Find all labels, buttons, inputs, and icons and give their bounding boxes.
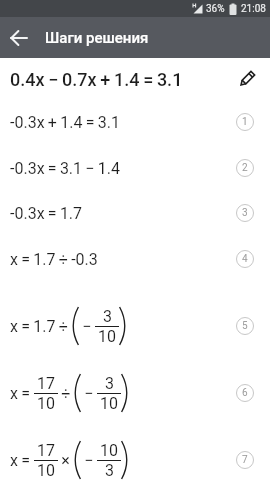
button[interactable]: x = 1.7 ÷ -0.3 <box>0 236 270 282</box>
staticText: 2 <box>242 162 248 174</box>
staticText: × <box>58 451 74 470</box>
staticText: x = <box>10 451 34 470</box>
staticText: 5 <box>242 320 248 332</box>
staticText: − <box>81 384 97 403</box>
button[interactable] <box>7 26 31 50</box>
staticText: 3 <box>105 461 114 480</box>
staticText: 0.4x − 0.7x + 1.4 = 3.1 <box>10 69 183 90</box>
staticText: 10 <box>100 394 118 413</box>
staticText: 4 <box>242 253 248 265</box>
staticText: 21:08 <box>241 3 266 15</box>
staticText: 10 <box>98 327 116 346</box>
staticText: -0.3x = 1.7 <box>10 204 83 223</box>
staticText: − <box>81 451 97 470</box>
staticText: 3 <box>242 207 248 219</box>
button[interactable]: -0.3x + 1.4 = 3.1 <box>0 99 270 145</box>
staticText: 3 <box>103 307 112 326</box>
staticText: 10 <box>100 441 118 460</box>
staticText: -0.3x + 1.4 = 3.1 <box>10 113 120 132</box>
button[interactable]: -0.3x = 1.7 <box>0 190 270 236</box>
staticText: 36% <box>206 3 225 15</box>
staticText: 10 <box>37 461 55 480</box>
staticText: x = 1.7 ÷ <box>10 317 72 336</box>
staticText: x = 1.7 ÷ -0.3 <box>10 250 98 269</box>
staticText: 3 <box>105 374 114 393</box>
staticText: 6 <box>242 387 248 399</box>
staticText: 1 <box>242 116 248 128</box>
button[interactable] <box>238 70 256 88</box>
staticText: x = <box>10 384 34 403</box>
staticText: 17 <box>37 374 55 393</box>
button[interactable]: 0.4x − 0.7x + 1.4 = 3.1 <box>0 58 270 100</box>
button[interactable]: -0.3x = 3.1 − 1.4 <box>0 145 270 191</box>
staticText: 10 <box>37 394 55 413</box>
button[interactable]: x = <box>0 359 270 426</box>
staticText: -0.3x = 3.1 − 1.4 <box>10 159 120 178</box>
button[interactable]: x = <box>0 426 270 480</box>
button[interactable]: x = 1.7 ÷ <box>0 292 270 359</box>
staticText: 7 <box>242 454 248 466</box>
staticText: Шаги решения <box>45 29 149 47</box>
staticText: 17 <box>37 441 55 460</box>
staticText: ÷ <box>58 384 74 403</box>
staticText: − <box>79 317 95 336</box>
